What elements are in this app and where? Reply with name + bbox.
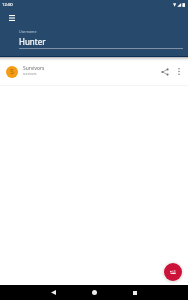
button[interactable]: Share [158, 65, 172, 79]
staticText: Username [19, 29, 37, 34]
button[interactable]: S [0, 56, 188, 85]
staticText: Survivors [23, 65, 45, 72]
button[interactable]: Home [87, 285, 102, 300]
button[interactable]: More options [172, 65, 185, 78]
staticText: S [10, 67, 14, 77]
staticText: survivors [23, 72, 37, 76]
button[interactable]: Add group [164, 263, 182, 281]
button[interactable]: Back [46, 285, 61, 300]
staticText: Hunter [19, 36, 46, 47]
button[interactable]: Open navigation menu [4, 10, 20, 26]
button[interactable]: Recent apps [127, 285, 142, 300]
staticText: 12:00 [2, 2, 13, 8]
